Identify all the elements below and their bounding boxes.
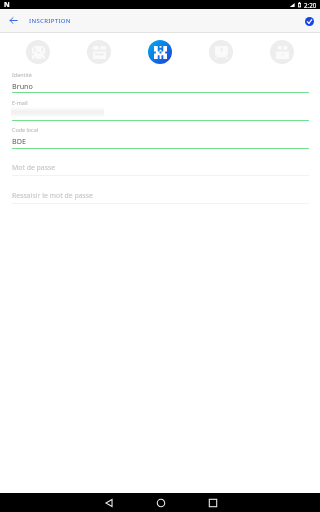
- staticText: Code local: [12, 126, 39, 133]
- button[interactable]: Confirm: [302, 14, 316, 28]
- button[interactable]: Avatar 3: [148, 40, 172, 64]
- button[interactable]: Back: [2, 9, 25, 32]
- button[interactable]: Recents: [203, 493, 222, 512]
- staticText: E-mail: [12, 99, 28, 106]
- button[interactable]: Back: [99, 493, 118, 512]
- staticText: Ressaisir le mot de passe: [12, 191, 93, 200]
- button[interactable]: Avatar 2: [87, 40, 111, 64]
- staticText: Bruno: [12, 81, 33, 91]
- staticText: Identité: [12, 71, 32, 78]
- staticText: INSCRIPTION: [29, 17, 71, 25]
- staticText: BDE: [12, 136, 26, 146]
- button[interactable]: Avatar 5: [270, 40, 294, 64]
- staticText: Mot de passe: [12, 163, 56, 172]
- button[interactable]: Avatar 1: [26, 40, 50, 64]
- button[interactable]: Home: [151, 493, 170, 512]
- button[interactable]: Avatar 4: [209, 40, 233, 64]
- staticText: 2:20: [304, 1, 317, 9]
- staticText: N: [4, 0, 10, 9]
